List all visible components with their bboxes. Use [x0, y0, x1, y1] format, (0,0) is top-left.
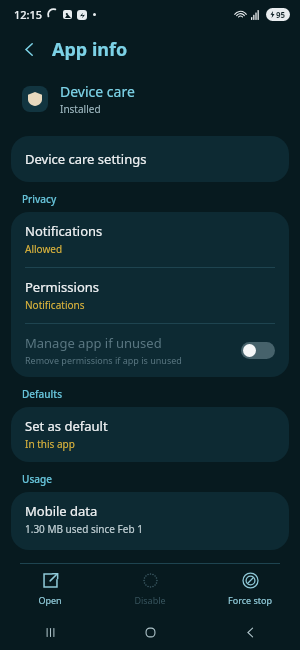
- staticText: In this app: [25, 437, 75, 451]
- button[interactable]: Mobile data: [11, 492, 289, 550]
- staticText: Permissions: [25, 278, 100, 296]
- staticText: Installed: [60, 102, 101, 116]
- staticText: Device care: [60, 82, 135, 101]
- staticText: 12:15: [14, 7, 43, 22]
- staticText: Mobile data: [25, 502, 98, 520]
- staticText: Defaults: [22, 387, 62, 401]
- staticText: Notifications: [25, 222, 103, 240]
- staticText: Device care settings: [25, 150, 147, 168]
- staticText: 1.30 MB used since Feb 1: [25, 522, 143, 536]
- staticText: App info: [52, 37, 128, 62]
- button[interactable]: Manage app if unused toggle: [241, 342, 275, 359]
- staticText: Allowed: [25, 242, 63, 256]
- staticText: Manage app if unused: [25, 334, 162, 352]
- button[interactable]: Open: [0, 564, 100, 614]
- button[interactable]: Notifications: [11, 212, 289, 267]
- button[interactable]: Device care settings: [11, 136, 289, 182]
- staticText: Set as default: [25, 417, 108, 435]
- staticText: Remove permissions if app is unused: [25, 354, 182, 366]
- staticText: Privacy: [22, 192, 57, 206]
- button[interactable]: Recent apps: [0, 614, 100, 650]
- button[interactable]: Disable: [100, 564, 200, 614]
- button[interactable]: Back: [200, 614, 300, 650]
- button[interactable]: Permissions: [11, 268, 289, 323]
- staticText: 95: [276, 9, 286, 20]
- staticText: Notifications: [25, 298, 85, 312]
- button[interactable]: Back: [14, 34, 44, 64]
- staticText: Disable: [134, 594, 166, 606]
- staticText: Usage: [22, 472, 52, 486]
- button[interactable]: Set as default: [11, 407, 289, 462]
- staticText: Force stop: [228, 594, 272, 606]
- staticText: Open: [38, 594, 62, 606]
- button[interactable]: Force stop: [200, 564, 300, 614]
- button[interactable]: Home: [100, 614, 200, 650]
- button[interactable]: Manage app if unused: [11, 324, 289, 377]
- button[interactable]: Device care: [0, 78, 300, 120]
